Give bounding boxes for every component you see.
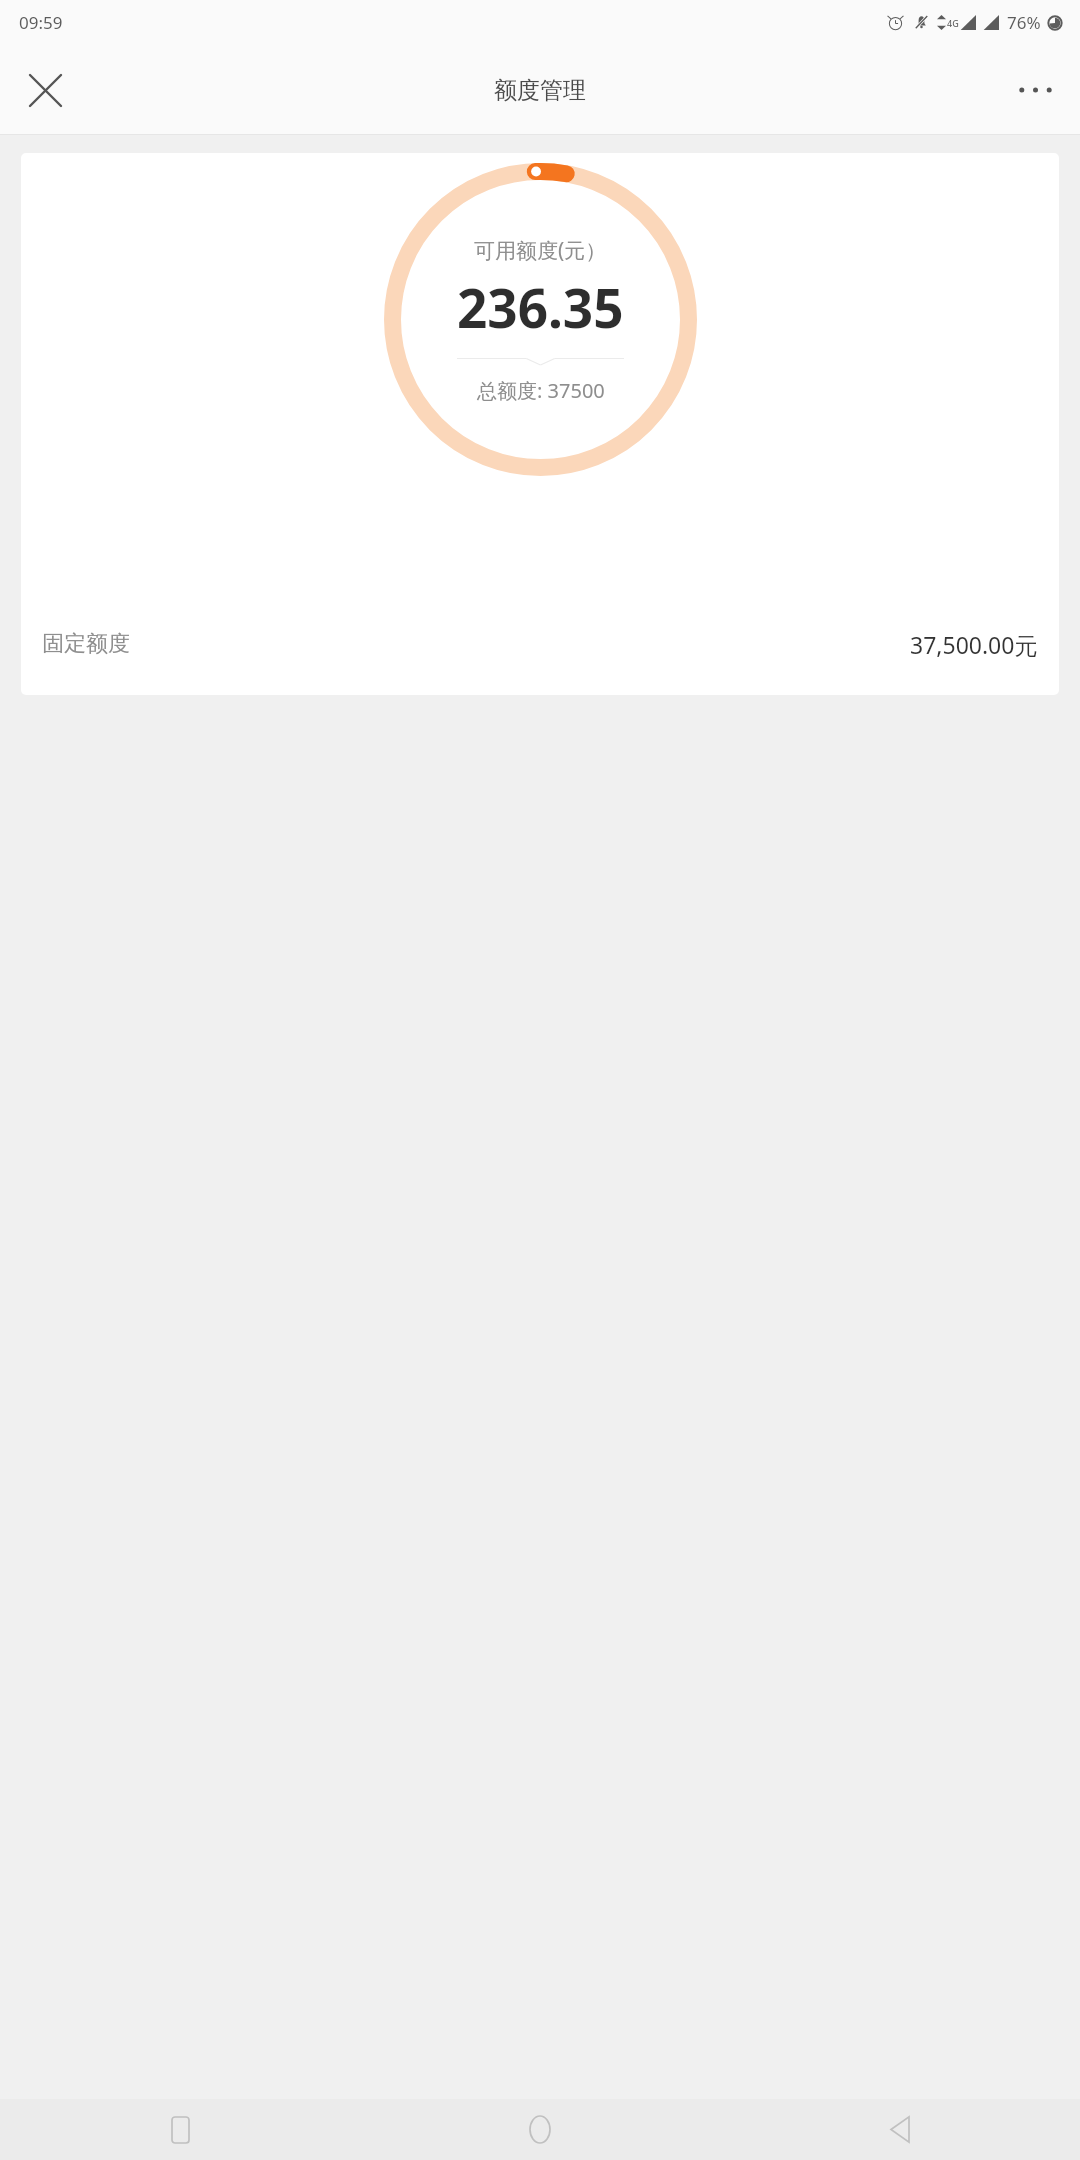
staticText: 76% bbox=[1007, 11, 1041, 34]
staticText: 固定额度 bbox=[42, 630, 130, 658]
staticText: 236.35 bbox=[457, 271, 624, 343]
button[interactable]: 可用额度(元） bbox=[21, 153, 1059, 695]
button[interactable]: Recent apps bbox=[0, 2099, 360, 2160]
staticText: 37,500.00元 bbox=[910, 629, 1038, 660]
button[interactable]: Close bbox=[0, 45, 90, 135]
staticText: 可用额度(元） bbox=[474, 236, 607, 265]
staticText: 4G bbox=[947, 17, 959, 29]
staticText: 总额度: 37500 bbox=[477, 377, 605, 404]
button[interactable]: More options bbox=[990, 45, 1080, 135]
staticText: 09:59 bbox=[19, 11, 63, 34]
staticText: 额度管理 bbox=[494, 76, 586, 105]
